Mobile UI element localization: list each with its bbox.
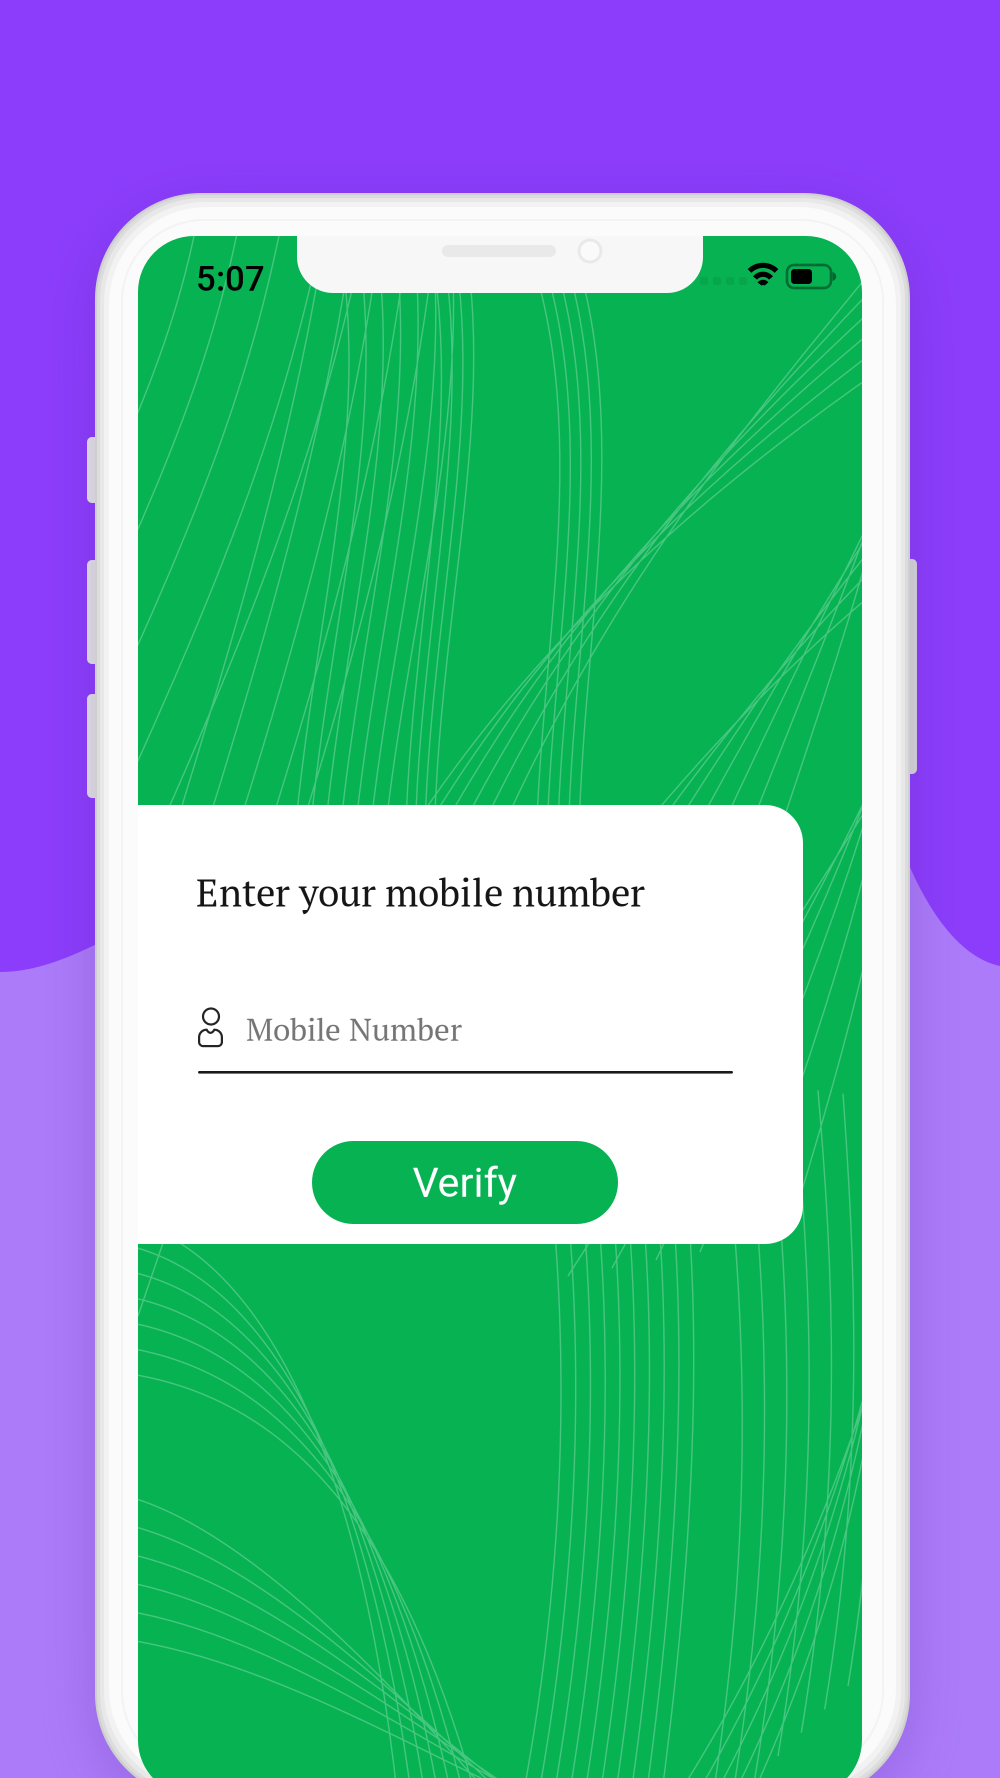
staticText: Mobile Number: [246, 1008, 462, 1050]
button[interactable]: Mobile Number: [198, 1008, 733, 1074]
button[interactable]: Verify: [312, 1141, 618, 1224]
staticText: Verify: [412, 1158, 517, 1207]
staticText: Enter your mobile number: [196, 866, 645, 918]
staticText: 5:07: [196, 259, 265, 299]
